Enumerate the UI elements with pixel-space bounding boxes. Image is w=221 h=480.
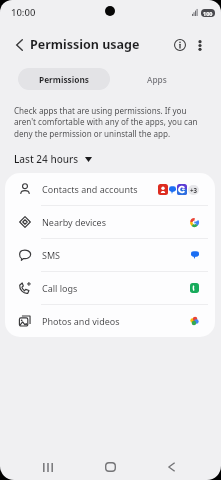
button[interactable]: Back xyxy=(153,453,190,480)
button[interactable]: Navigate up xyxy=(7,33,31,57)
button[interactable]: Photos and videos xyxy=(5,305,215,337)
staticText: Permission usage xyxy=(30,36,140,53)
button[interactable]: Permissions xyxy=(18,68,110,90)
staticText: Permissions xyxy=(39,74,89,85)
staticText: Apps xyxy=(147,74,167,85)
staticText: Last 24 hours xyxy=(14,152,79,166)
staticText: Call logs xyxy=(42,282,78,294)
staticText: SMS xyxy=(42,249,61,261)
button[interactable]: More options xyxy=(187,32,213,58)
staticText: Photos and videos xyxy=(42,315,120,327)
button[interactable]: Nearby devices xyxy=(5,206,215,238)
button[interactable]: Home xyxy=(92,453,129,480)
button[interactable]: Contacts and accounts xyxy=(5,173,215,205)
button[interactable]: Last 24 hours xyxy=(11,149,95,169)
staticText: +3 xyxy=(190,186,198,194)
button[interactable]: Information xyxy=(167,32,193,58)
staticText: 10:00 xyxy=(11,6,36,19)
button[interactable]: Apps xyxy=(111,68,203,90)
staticText: Contacts and accounts xyxy=(42,183,138,195)
button[interactable]: Recent apps xyxy=(29,453,66,480)
staticText: 100 xyxy=(203,10,213,17)
button[interactable]: SMS xyxy=(5,239,215,271)
staticText: Check apps that are using permissions. I… xyxy=(14,105,199,139)
button[interactable]: Call logs xyxy=(5,272,215,304)
staticText: Nearby devices xyxy=(42,216,106,228)
